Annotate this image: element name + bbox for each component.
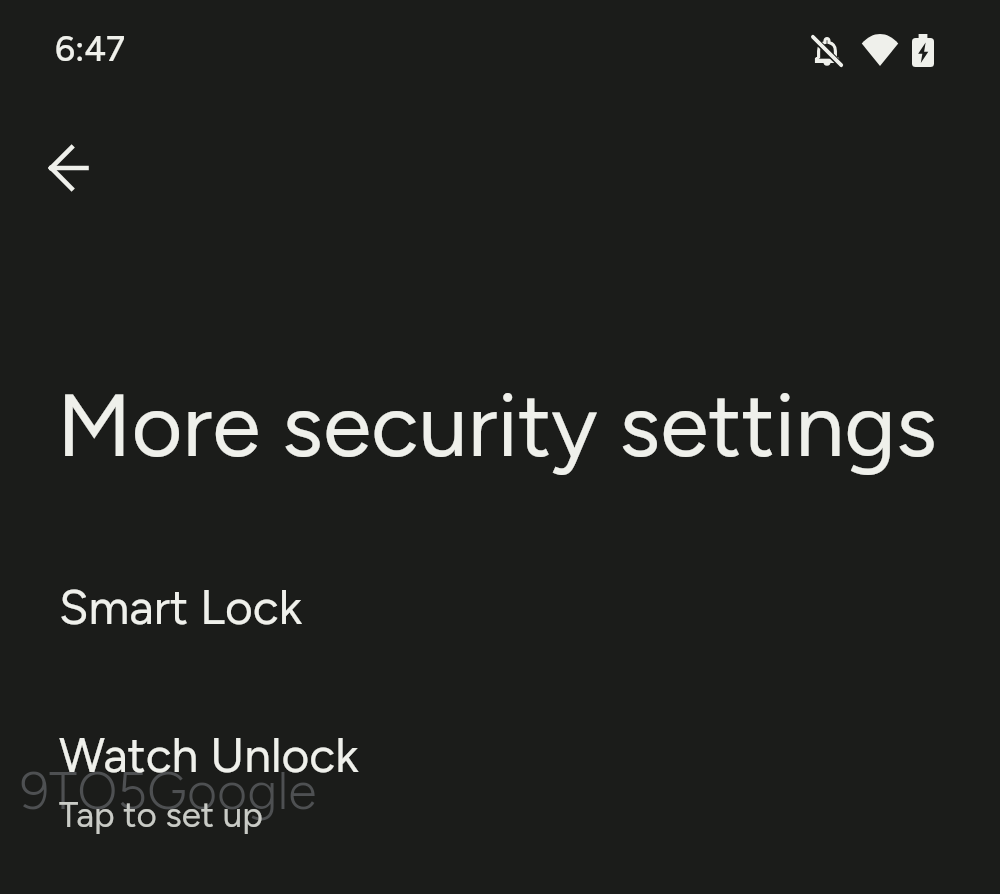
staticText: More security settings xyxy=(57,372,938,478)
button[interactable]: Smart Lock xyxy=(0,566,1000,650)
staticText: Smart Lock xyxy=(59,578,303,636)
staticText: Tap to set up xyxy=(59,794,263,836)
staticText: 6:47 xyxy=(55,28,126,70)
staticText: Watch Unlock xyxy=(59,726,359,784)
button[interactable]: Watch Unlock xyxy=(0,714,1000,850)
staticText: 9TO5Google xyxy=(20,760,317,822)
button[interactable]: Back xyxy=(25,124,113,212)
